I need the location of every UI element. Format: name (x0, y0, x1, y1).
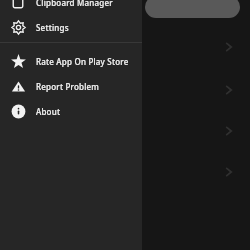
button[interactable]: Open item (222, 124, 236, 138)
staticText: About (36, 106, 61, 117)
button[interactable]: Clipboard Manager (0, 0, 142, 14)
button[interactable]: Open item (222, 165, 236, 179)
button[interactable]: Rate App On Play Store (0, 49, 142, 74)
staticText: Clipboard Manager (36, 0, 113, 8)
button[interactable]: Open item (222, 83, 236, 97)
staticText: Settings (36, 22, 69, 33)
staticText: Report Problem (36, 81, 100, 92)
button[interactable]: About (0, 99, 142, 124)
button[interactable]: Open item (222, 40, 236, 54)
button[interactable] (145, 0, 240, 18)
button[interactable]: Report Problem (0, 74, 142, 99)
staticText: Rate App On Play Store (36, 56, 129, 67)
button[interactable]: Settings (0, 14, 142, 40)
